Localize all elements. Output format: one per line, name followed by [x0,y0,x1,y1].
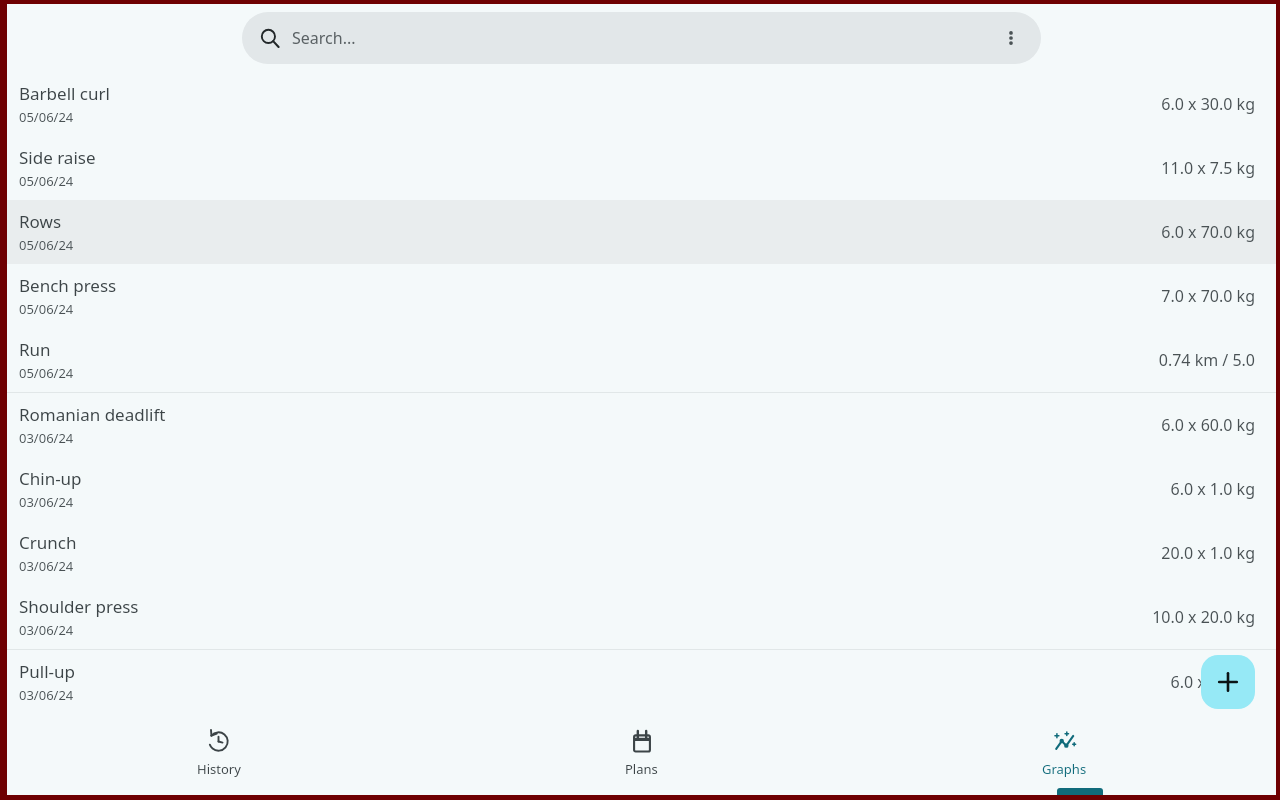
button[interactable]: Crunch [7,521,1276,585]
staticText: 03/06/24 [19,429,74,447]
staticText: Run [19,338,51,361]
staticText: Search... [292,27,356,49]
button[interactable]: Rows [7,200,1276,264]
staticText: Side raise [19,146,96,169]
staticText: 6.0 x 1.0 kg [1170,671,1255,693]
staticText: 6.0 x 30.0 kg [1161,93,1255,115]
button[interactable]: More options [989,16,1033,60]
staticText: 20.0 x 1.0 kg [1161,542,1255,564]
staticText: 03/06/24 [19,621,74,639]
button[interactable]: Barbell curl [7,72,1276,136]
staticText: 10.0 x 20.0 kg [1152,606,1255,628]
button[interactable]: Graphs [853,719,1276,795]
staticText: 6.0 x 1.0 kg [1170,478,1255,500]
button[interactable]: History [7,719,430,795]
staticText: 03/06/24 [19,493,74,511]
button[interactable]: Search... [242,12,1041,64]
staticText: Shoulder press [19,595,139,618]
button[interactable]: Romanian deadlift [7,393,1276,457]
staticText: Pull-up [19,660,75,683]
staticText: 05/06/24 [19,172,74,190]
staticText: 05/06/24 [19,364,74,382]
staticText: 05/06/24 [19,300,74,318]
button[interactable]: Plans [430,719,853,795]
staticText: Bench press [19,274,117,297]
staticText: 03/06/24 [19,686,74,704]
staticText: 05/06/24 [19,236,74,254]
staticText: Plans [625,760,658,778]
staticText: 7.0 x 70.0 kg [1161,285,1255,307]
staticText: 05/06/24 [19,108,74,126]
button[interactable]: Run [7,328,1276,392]
staticText: Graphs [1042,760,1087,778]
button[interactable]: Add [1201,655,1255,709]
staticText: Romanian deadlift [19,403,166,426]
staticText: 6.0 x 70.0 kg [1161,221,1255,243]
staticText: Barbell curl [19,82,110,105]
staticText: 11.0 x 7.5 kg [1161,157,1255,179]
button[interactable]: Side raise [7,136,1276,200]
button[interactable]: Bench press [7,264,1276,328]
staticText: Chin-up [19,467,82,490]
staticText: History [197,760,241,778]
button[interactable]: Chin-up [7,457,1276,521]
button[interactable]: Pull-up [7,650,1276,714]
button[interactable]: Shoulder press [7,585,1276,649]
staticText: Crunch [19,531,77,554]
staticText: 03/06/24 [19,557,74,575]
staticText: 6.0 x 60.0 kg [1161,414,1255,436]
staticText: Rows [19,210,62,233]
staticText: 0.74 km / 5.0 [1158,349,1255,371]
